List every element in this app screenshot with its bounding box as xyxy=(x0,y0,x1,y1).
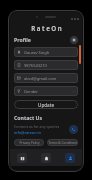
button[interactable]: Terms & Conditions xyxy=(47,139,78,146)
button[interactable]: Shop xyxy=(17,153,27,163)
staticText: Profile xyxy=(14,36,31,43)
staticText: Gender xyxy=(24,89,39,94)
staticText: 9876543210 xyxy=(24,63,47,68)
button[interactable]: Call support xyxy=(69,125,78,134)
staticText: Terms & Conditions xyxy=(48,141,78,145)
staticText: Privacy Policy xyxy=(19,141,40,145)
button[interactable]: info@rateon.in xyxy=(14,130,41,135)
button[interactable]: Gaurav Singh xyxy=(14,47,78,57)
button[interactable]: abcd@gmail.com xyxy=(14,73,78,83)
staticText: Gaurav Singh xyxy=(24,50,50,55)
staticText: abcd@gmail.com xyxy=(24,76,57,81)
button[interactable]: Gender xyxy=(14,86,78,96)
button[interactable]: 9876543210 xyxy=(14,60,78,70)
staticText: Update xyxy=(38,102,55,108)
staticText: R a t e O n xyxy=(31,24,62,32)
button[interactable]: Edit profile photo xyxy=(70,36,78,44)
button[interactable]: Privacy Policy xyxy=(14,139,44,146)
button[interactable]: Profile xyxy=(65,153,75,163)
staticText: Contact Us xyxy=(14,114,43,121)
staticText: Connect us for any queries and help xyxy=(14,124,66,129)
staticText: info@rateon.in xyxy=(14,130,41,135)
button[interactable]: Update xyxy=(14,100,78,109)
button[interactable]: Home xyxy=(41,153,51,163)
